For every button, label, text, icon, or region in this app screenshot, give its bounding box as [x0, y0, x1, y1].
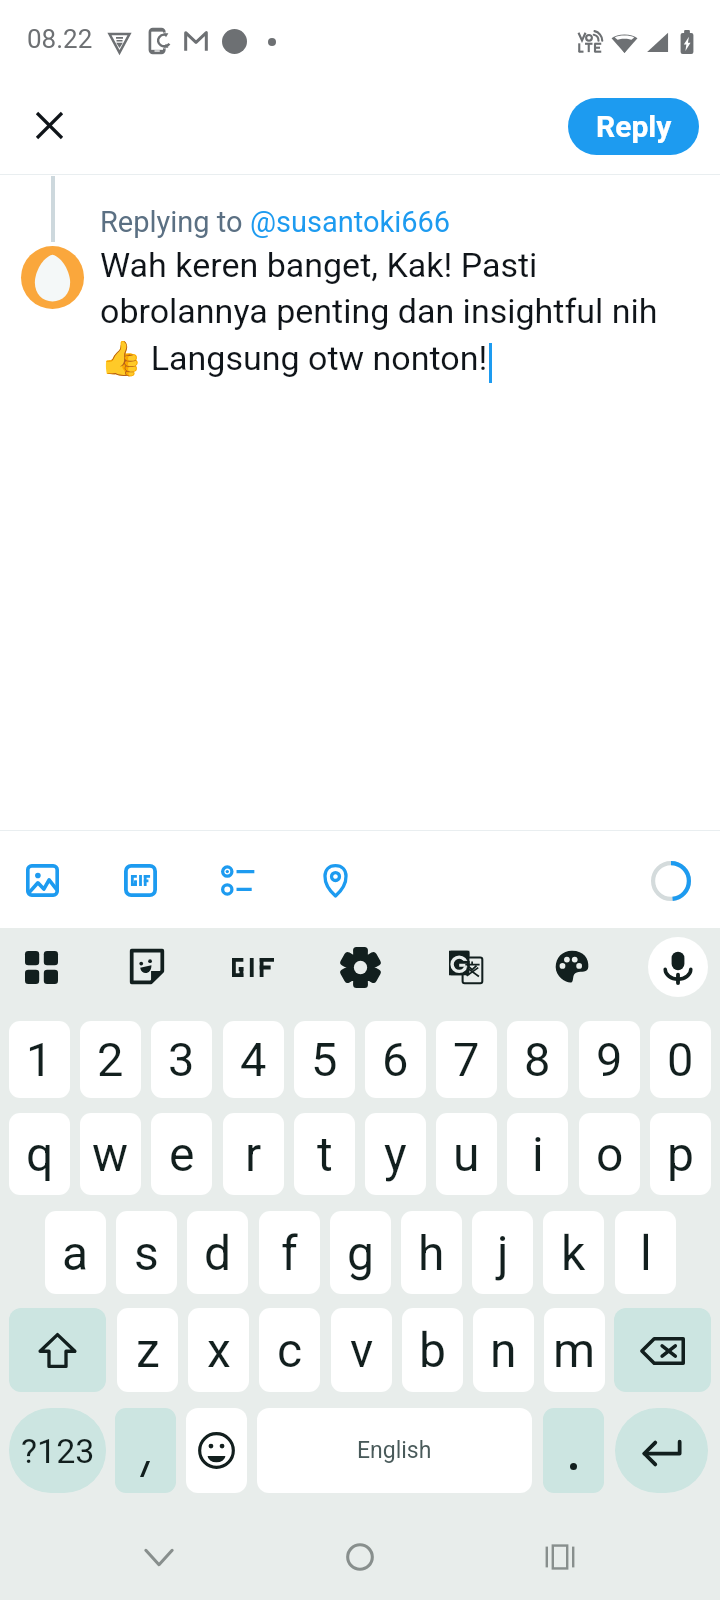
staticText: e	[169, 1126, 195, 1182]
button[interactable]: a	[45, 1211, 106, 1294]
button[interactable]: v	[331, 1308, 392, 1392]
button[interactable]: Close	[25, 101, 73, 149]
staticText: 9	[596, 1032, 623, 1087]
staticText: English	[357, 1437, 432, 1464]
button[interactable]: m	[544, 1308, 605, 1392]
staticText: x	[207, 1322, 231, 1378]
button[interactable]: Reply	[568, 98, 699, 155]
button[interactable]: t	[294, 1113, 355, 1195]
button[interactable]: e	[151, 1113, 212, 1195]
button[interactable]: 9	[579, 1021, 640, 1098]
staticText: 4	[240, 1032, 267, 1087]
button[interactable]: Backspace	[614, 1308, 711, 1392]
button[interactable]: f	[259, 1211, 320, 1294]
button[interactable]: 2	[80, 1021, 141, 1098]
button[interactable]: b	[402, 1308, 463, 1392]
button[interactable]: 0	[650, 1021, 711, 1098]
button[interactable]: Settings	[332, 939, 388, 995]
staticText: n	[490, 1322, 517, 1378]
staticText: u	[453, 1126, 480, 1182]
button[interactable]: 7	[436, 1021, 497, 1098]
button[interactable]: @susantoki666	[250, 205, 451, 239]
staticText: w	[92, 1126, 129, 1182]
button[interactable]: Add a GIF	[113, 853, 167, 907]
button[interactable]: y	[365, 1113, 426, 1195]
button[interactable]: Enter	[615, 1408, 708, 1493]
button[interactable]: x	[188, 1308, 249, 1392]
button[interactable]: Keyboard layouts	[13, 939, 69, 995]
staticText: t	[317, 1126, 333, 1182]
staticText: 3	[168, 1032, 195, 1087]
button[interactable]: w	[80, 1113, 141, 1195]
button[interactable]: j	[472, 1211, 533, 1294]
staticText: g	[347, 1225, 374, 1281]
button[interactable]: 6	[365, 1021, 426, 1098]
staticText: o	[596, 1126, 624, 1182]
button[interactable]: Symbols	[9, 1408, 106, 1493]
button[interactable]: Wah keren banget, Kak! Pasti obrolannya …	[100, 245, 658, 379]
staticText: s	[134, 1225, 159, 1281]
staticText: a	[62, 1225, 89, 1281]
button[interactable]: Space	[257, 1408, 532, 1493]
button[interactable]: Theme	[544, 939, 600, 995]
button[interactable]: Add photos or video	[15, 853, 69, 907]
button[interactable]: o	[579, 1113, 640, 1195]
staticText: 5	[311, 1032, 338, 1087]
staticText: f	[281, 1225, 298, 1281]
staticText: Wah keren banget, Kak! Pasti obrolannya …	[100, 245, 658, 379]
button[interactable]: Translate	[438, 939, 494, 995]
staticText: Reply	[596, 109, 672, 144]
button[interactable]: k	[543, 1211, 604, 1294]
staticText: 7	[453, 1032, 480, 1087]
button[interactable]: Shift	[9, 1308, 106, 1392]
staticText: j	[497, 1225, 509, 1281]
button[interactable]: Character count	[644, 854, 698, 908]
button[interactable]: 4	[223, 1021, 284, 1098]
staticText: Replying to	[100, 205, 250, 239]
button[interactable]: 8	[507, 1021, 568, 1098]
button[interactable]: s	[116, 1211, 177, 1294]
button[interactable]: r	[223, 1113, 284, 1195]
staticText: p	[667, 1126, 694, 1182]
staticText: z	[136, 1322, 160, 1378]
button[interactable]: 3	[151, 1021, 212, 1098]
button[interactable]: h	[401, 1211, 462, 1294]
button[interactable]: p	[650, 1113, 711, 1195]
staticText: l	[640, 1225, 652, 1281]
button[interactable]: u	[436, 1113, 497, 1195]
button[interactable]: i	[507, 1113, 568, 1195]
button[interactable]: Hide keyboard	[124, 1522, 194, 1592]
button[interactable]: d	[187, 1211, 248, 1294]
button[interactable]: Comma	[115, 1408, 176, 1493]
button[interactable]: Home	[325, 1522, 395, 1592]
staticText: i	[532, 1126, 544, 1182]
staticText: q	[26, 1126, 54, 1182]
button[interactable]: Voice input	[648, 937, 708, 997]
staticText: 6	[382, 1032, 409, 1087]
button[interactable]: GIF keyboard	[225, 939, 281, 995]
button[interactable]: Period	[543, 1408, 604, 1493]
staticText: 08.22	[27, 24, 93, 54]
button[interactable]: 5	[294, 1021, 355, 1098]
button[interactable]: q	[9, 1113, 70, 1195]
staticText: m	[553, 1322, 596, 1378]
staticText: r	[245, 1126, 262, 1182]
button[interactable]: z	[117, 1308, 178, 1392]
staticText: b	[419, 1322, 446, 1378]
button[interactable]: c	[259, 1308, 320, 1392]
button[interactable]: Add poll	[211, 853, 265, 907]
button[interactable]: Recent apps	[525, 1522, 595, 1592]
button[interactable]: Emoji	[186, 1408, 247, 1493]
button[interactable]: Tag location	[308, 853, 362, 907]
button[interactable]: n	[473, 1308, 534, 1392]
button[interactable]: Stickers	[119, 939, 175, 995]
staticText: 2	[97, 1032, 124, 1087]
button[interactable]: 1	[9, 1021, 70, 1098]
staticText: d	[204, 1225, 232, 1281]
staticText: c	[277, 1322, 303, 1378]
button[interactable]: l	[615, 1211, 676, 1294]
staticText: 8	[524, 1032, 551, 1087]
button[interactable]: g	[330, 1211, 391, 1294]
staticText: ?123	[21, 1431, 95, 1471]
staticText: 1	[26, 1032, 53, 1087]
